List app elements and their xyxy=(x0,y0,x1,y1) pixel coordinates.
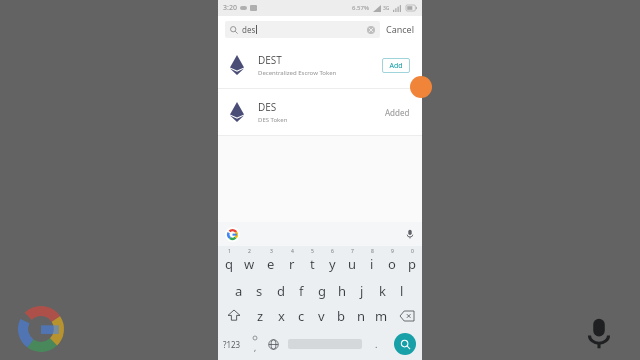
staticText: f xyxy=(299,282,304,300)
staticText: DES xyxy=(258,100,277,114)
staticText: d xyxy=(277,282,285,300)
button[interactable]: Google xyxy=(225,227,240,242)
staticText: i xyxy=(370,255,374,273)
button[interactable]: m xyxy=(371,302,391,330)
staticText: DEST xyxy=(258,53,282,67)
button[interactable]: z xyxy=(250,302,271,330)
staticText: Cancel xyxy=(386,23,415,35)
staticText: w xyxy=(244,255,255,273)
button[interactable]: d xyxy=(270,274,291,302)
staticText: 4 xyxy=(291,248,294,255)
staticText: q xyxy=(225,255,233,273)
staticText: k xyxy=(379,282,386,300)
staticText: . xyxy=(375,338,378,350)
button[interactable]: s xyxy=(249,274,270,302)
button[interactable]: 8 xyxy=(362,246,382,274)
staticText: 6.57% xyxy=(352,4,370,12)
staticText: s xyxy=(256,282,263,300)
staticText: Decentralized Escrow Token xyxy=(258,69,337,77)
staticText: t xyxy=(310,255,315,273)
button[interactable]: v xyxy=(311,302,331,330)
button[interactable]: 1 xyxy=(218,246,239,274)
staticText: des xyxy=(242,24,256,35)
staticText: y xyxy=(329,255,336,273)
staticText: 1 xyxy=(228,248,231,255)
staticText: 3G xyxy=(383,5,390,12)
button[interactable]: k xyxy=(372,274,392,302)
staticText: 0 xyxy=(411,248,414,255)
staticText: c xyxy=(298,307,305,325)
staticText: DES Token xyxy=(258,116,288,124)
button[interactable]: l xyxy=(392,274,412,302)
staticText: b xyxy=(337,307,345,325)
staticText: 5 xyxy=(311,248,314,255)
button[interactable]: 4 xyxy=(281,246,302,274)
staticText: x xyxy=(278,307,285,325)
button[interactable]: Clear xyxy=(367,26,375,34)
staticText: o xyxy=(388,255,396,273)
staticText: j xyxy=(360,282,364,300)
button[interactable]: 7 xyxy=(342,246,362,274)
button[interactable]: DEST xyxy=(218,42,422,88)
staticText: 6 xyxy=(331,248,334,255)
button[interactable]: b xyxy=(331,302,351,330)
staticText: a xyxy=(235,282,243,300)
staticText: u xyxy=(348,255,357,273)
button[interactable]: Shift xyxy=(218,302,250,330)
button[interactable]: des xyxy=(230,21,375,38)
button[interactable]: 6 xyxy=(322,246,342,274)
button[interactable]: . xyxy=(366,330,387,358)
staticText: v xyxy=(318,307,325,325)
staticText: 9 xyxy=(391,248,394,255)
button[interactable]: x xyxy=(271,302,291,330)
staticText: 8 xyxy=(371,248,374,255)
button[interactable]: DES xyxy=(218,89,422,135)
button[interactable]: a xyxy=(228,274,249,302)
button[interactable]: Chat xyxy=(410,76,432,98)
button[interactable]: c xyxy=(291,302,311,330)
staticText: , xyxy=(254,342,257,353)
staticText: Add xyxy=(389,61,403,71)
button[interactable]: Emoji xyxy=(246,330,263,358)
staticText: g xyxy=(318,282,326,300)
button[interactable]: ?123 xyxy=(218,330,246,358)
button[interactable]: 0 xyxy=(402,246,422,274)
staticText: 7 xyxy=(351,248,354,255)
staticText: h xyxy=(338,282,347,300)
staticText: p xyxy=(408,255,416,273)
button[interactable]: 3 xyxy=(260,246,281,274)
button[interactable]: Search xyxy=(394,333,416,355)
button[interactable]: h xyxy=(332,274,352,302)
staticText: z xyxy=(257,307,264,325)
staticText: l xyxy=(400,282,404,300)
staticText: n xyxy=(357,307,366,325)
staticText: 3 xyxy=(270,248,273,255)
button[interactable]: Voice search xyxy=(582,316,616,350)
button[interactable]: 2 xyxy=(239,246,260,274)
button[interactable]: Cancel xyxy=(386,23,415,35)
button[interactable]: Voice input xyxy=(405,229,415,239)
button[interactable]: Google xyxy=(18,306,64,352)
button[interactable]: 5 xyxy=(302,246,322,274)
button[interactable]: Backspace xyxy=(391,302,422,330)
staticText: e xyxy=(267,255,275,273)
button[interactable]: n xyxy=(351,302,371,330)
button[interactable]: j xyxy=(352,274,372,302)
staticText: Added xyxy=(385,107,410,118)
staticText: m xyxy=(375,307,388,325)
staticText: 2 xyxy=(248,248,251,255)
staticText: 3:20 xyxy=(223,3,237,13)
button[interactable]: Add xyxy=(382,58,410,73)
button[interactable]: g xyxy=(312,274,332,302)
button[interactable]: f xyxy=(291,274,312,302)
staticText: ?123 xyxy=(223,339,241,350)
button[interactable]: Change language xyxy=(263,330,284,358)
button[interactable]: 9 xyxy=(382,246,402,274)
staticText: r xyxy=(289,255,295,273)
